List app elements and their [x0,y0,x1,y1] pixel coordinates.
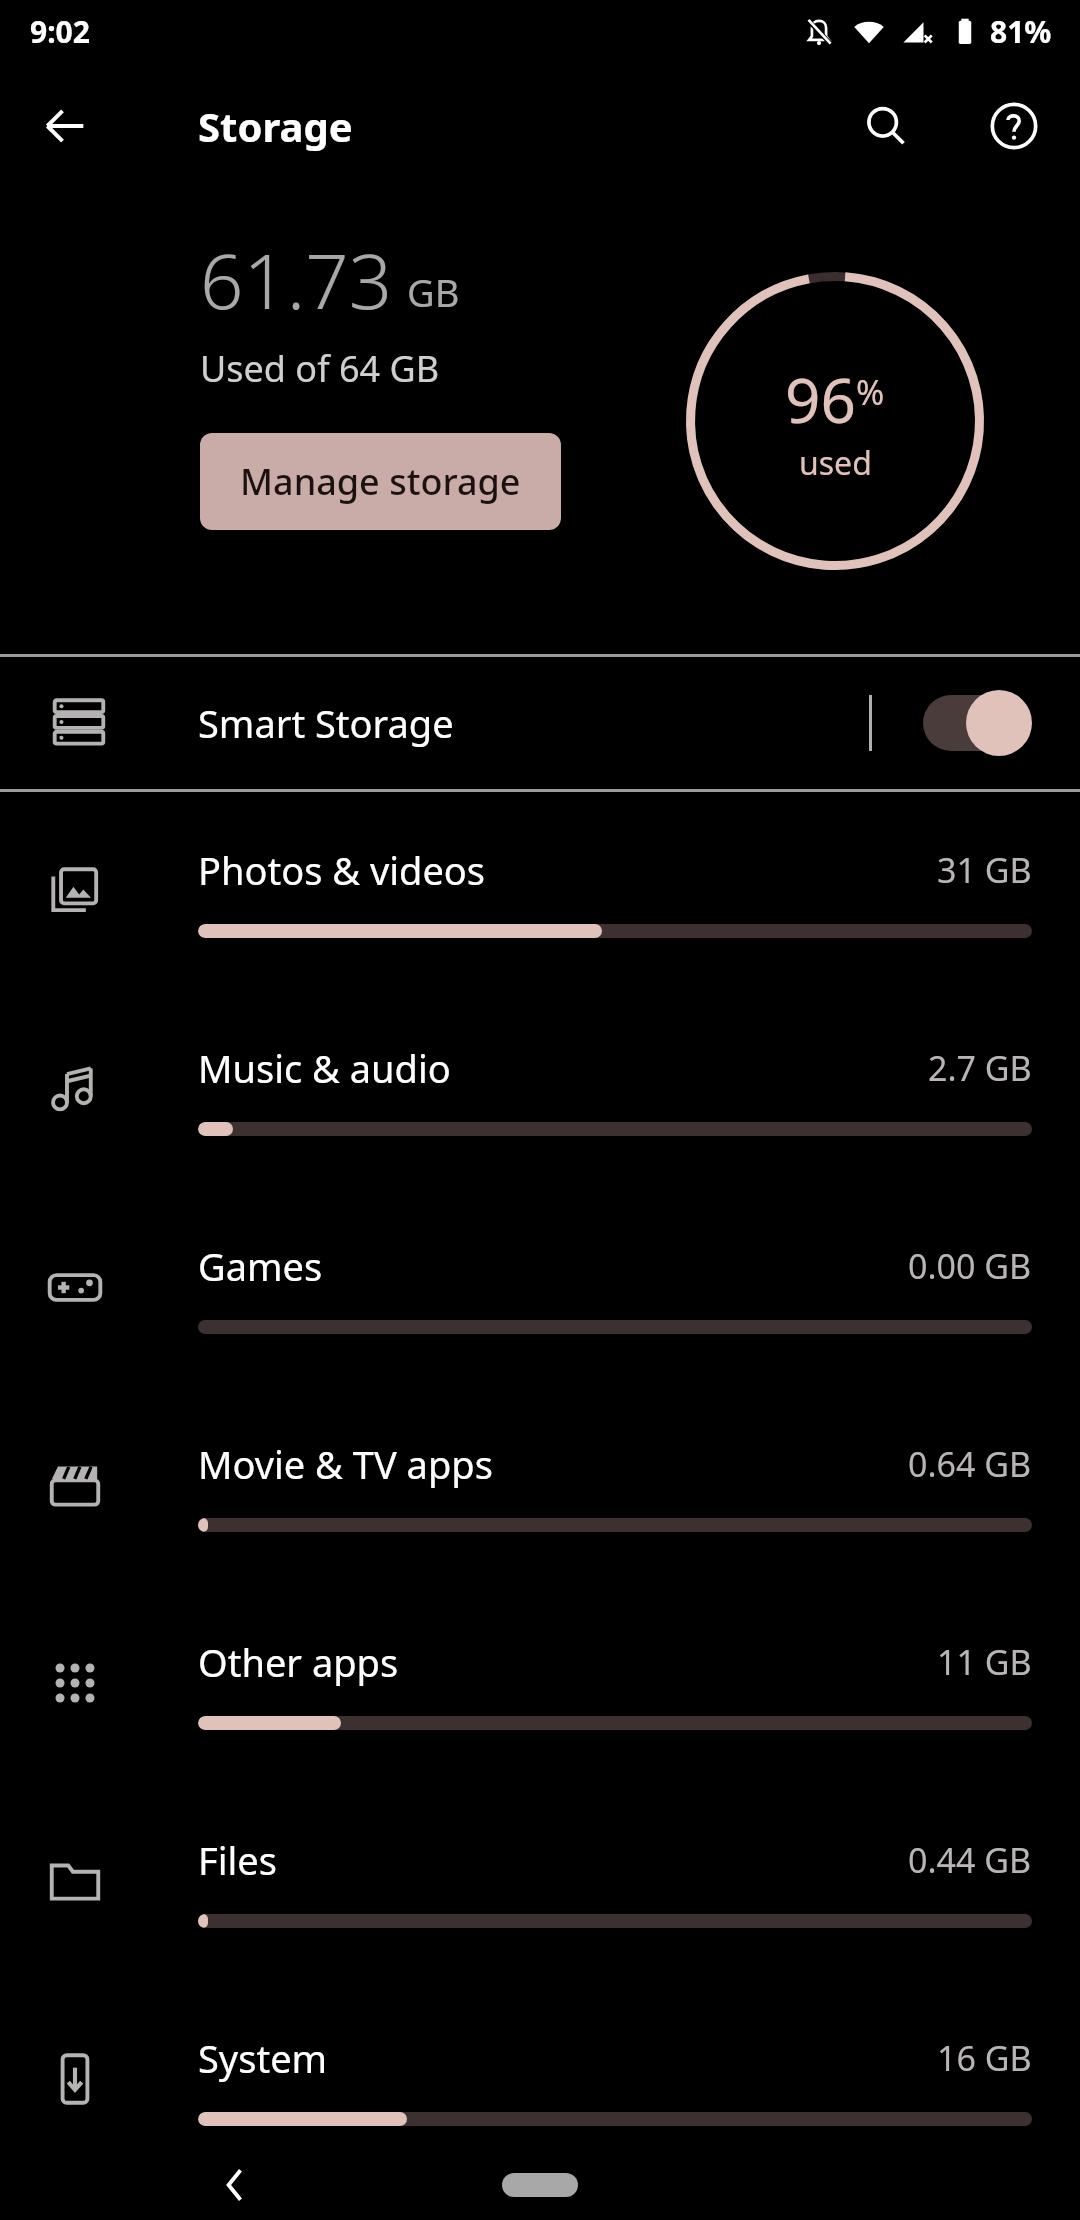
staticText: 2.7 GB [928,1045,1032,1091]
staticText: Files [198,1834,908,1886]
button[interactable]: Other apps [0,1584,1080,1782]
button[interactable]: Files [0,1782,1080,1980]
button[interactable]: Games [0,1188,1080,1386]
button[interactable]: Music & audio [0,990,1080,1188]
button[interactable]: Home [502,2173,578,2197]
staticText: Games [198,1240,908,1292]
staticText: Photos & videos [198,844,937,896]
staticText: 31 GB [937,847,1032,893]
staticText: 61.73 [200,228,393,332]
staticText: % [856,369,885,415]
button[interactable]: Smart Storage [0,657,1080,789]
staticText: Manage storage [240,457,521,506]
staticText: 96 [785,357,856,441]
staticText: Smart Storage [198,697,454,749]
staticText: 11 GB [937,1639,1032,1685]
staticText: 0.64 GB [908,1441,1032,1487]
button[interactable]: Manage storage [200,433,561,530]
staticText: 81% [990,11,1052,52]
button[interactable]: System [0,1980,1080,2178]
staticText: GB [407,266,460,318]
staticText: Storage [198,99,353,153]
button[interactable]: Smart Storage toggle [912,675,1032,771]
button[interactable]: Back [18,78,114,174]
staticText: Used of 64 GB [200,344,440,393]
button[interactable]: Photos & videos [0,792,1080,990]
staticText: used [799,441,872,485]
staticText: Movie & TV apps [198,1438,908,1490]
staticText: System [198,2032,937,2084]
button[interactable]: Help [966,78,1062,174]
button[interactable]: Back [200,2150,270,2220]
staticText: 9:02 [30,11,90,52]
staticText: 16 GB [937,2035,1032,2081]
button[interactable]: Movie & TV apps [0,1386,1080,1584]
staticText: Other apps [198,1636,937,1688]
staticText: Music & audio [198,1042,928,1094]
button[interactable]: Search [838,78,934,174]
staticText: 0.44 GB [908,1837,1032,1883]
staticText: 0.00 GB [908,1243,1032,1289]
